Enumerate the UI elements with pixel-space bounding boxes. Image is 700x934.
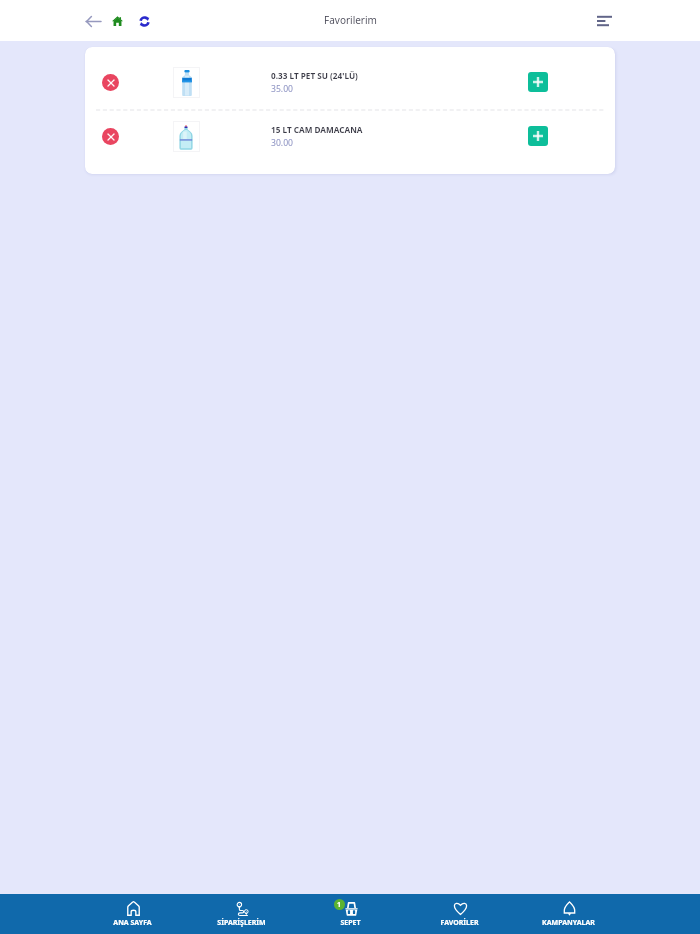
staticText: 15 LT CAM DAMACANA	[271, 124, 363, 135]
staticText: SEPET	[340, 918, 361, 928]
staticText: 1	[337, 900, 342, 910]
button[interactable]: Remove from favorites	[102, 74, 119, 91]
button[interactable]: Remove from favorites	[85, 109, 615, 163]
staticText: 30.00	[271, 137, 293, 149]
button[interactable]: Remove from favorites	[85, 55, 615, 109]
button[interactable]: Add to cart	[528, 72, 548, 92]
staticText: SİPARİŞLERİM	[217, 918, 266, 928]
button[interactable]: KAMPANYALAR	[514, 894, 623, 934]
button[interactable]: Remove from favorites	[102, 128, 119, 145]
button[interactable]: Refresh	[132, 9, 156, 33]
staticText: KAMPANYALAR	[542, 918, 595, 928]
staticText: FAVORİLER	[440, 918, 479, 928]
button[interactable]: Add to cart	[528, 126, 548, 146]
button[interactable]: Sort	[591, 8, 617, 34]
staticText: 35.00	[271, 83, 293, 95]
button[interactable]: ANA SAYFA	[78, 894, 187, 934]
button[interactable]: SİPARİŞLERİM	[187, 894, 296, 934]
staticText: Favorilerim	[324, 13, 377, 27]
button[interactable]: Home	[105, 9, 129, 33]
staticText: 0.33 LT PET SU (24'LÜ)	[271, 70, 358, 81]
button[interactable]: FAVORİLER	[405, 894, 514, 934]
staticText: ANA SAYFA	[113, 918, 152, 928]
button[interactable]: Back	[81, 9, 105, 33]
button[interactable]: 1	[296, 894, 405, 934]
